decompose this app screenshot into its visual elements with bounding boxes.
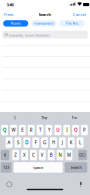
button[interactable]: Z	[12, 150, 19, 160]
button[interactable]: B	[48, 150, 55, 160]
staticText: O	[74, 127, 77, 133]
button[interactable]: Search	[65, 162, 87, 173]
staticText: R	[30, 127, 33, 133]
button[interactable]: The	[29, 112, 59, 123]
staticText: J	[62, 140, 63, 146]
staticText: C	[32, 152, 35, 158]
staticText: A	[8, 140, 11, 146]
button[interactable]: Forename(s)	[31, 20, 56, 27]
staticText: X	[23, 152, 26, 158]
button[interactable]: E	[19, 125, 26, 135]
button[interactable]: M	[65, 150, 72, 160]
staticText: M	[67, 152, 71, 158]
staticText: Z	[14, 152, 17, 158]
staticText: Search	[38, 12, 51, 17]
button[interactable]: Search	[33, 10, 57, 18]
button[interactable]: P	[81, 125, 88, 135]
button[interactable]: S	[15, 137, 21, 148]
staticText: U	[56, 127, 59, 133]
button[interactable]: Emoji keyboard	[3, 178, 15, 190]
button[interactable]: A	[6, 137, 12, 148]
staticText: 123	[3, 165, 9, 170]
button[interactable]: O	[72, 125, 79, 135]
button[interactable]: W	[10, 125, 17, 135]
button[interactable]: C	[30, 150, 37, 160]
button[interactable]: I’m	[59, 112, 90, 123]
button[interactable]: Q	[1, 125, 8, 135]
staticText: P	[83, 127, 86, 133]
staticText: Search	[70, 165, 81, 170]
staticText: W	[11, 127, 15, 133]
staticText: Name	[11, 21, 21, 26]
staticText: I’m	[71, 115, 77, 120]
staticText: Cancel	[73, 12, 86, 17]
staticText: ⬆	[3, 152, 7, 158]
button[interactable]: K	[68, 137, 75, 148]
button[interactable]: T	[37, 125, 43, 135]
staticText: B	[50, 152, 53, 158]
staticText: D	[25, 140, 28, 146]
staticText: K	[70, 140, 73, 146]
button[interactable]: ⬆	[1, 150, 9, 160]
button[interactable]: 123	[1, 162, 12, 173]
button[interactable]: V	[39, 150, 46, 160]
button[interactable]: ⌦	[78, 150, 87, 160]
button[interactable]: L	[77, 137, 83, 148]
staticText: G	[43, 140, 46, 146]
staticText: ⌦	[79, 152, 86, 158]
button[interactable]: Dictation	[75, 178, 87, 190]
button[interactable]: D	[23, 137, 30, 148]
staticText: N	[58, 152, 61, 158]
staticText: space	[33, 165, 43, 170]
staticText: File No.	[66, 21, 79, 26]
staticText: F	[35, 140, 37, 146]
button[interactable]: R	[28, 125, 35, 135]
staticText: V	[41, 152, 44, 158]
button[interactable]: F	[32, 137, 39, 148]
staticText: H	[52, 140, 55, 146]
staticText: L	[79, 140, 81, 146]
button[interactable]: space	[14, 162, 63, 173]
button[interactable]: U	[54, 125, 61, 135]
staticText: Trees	[3, 12, 13, 17]
button[interactable]: Cancel	[72, 10, 86, 18]
staticText: Y	[48, 127, 50, 133]
button[interactable]: I	[63, 125, 70, 135]
button[interactable]: Name	[3, 20, 28, 27]
button[interactable]: G	[41, 137, 48, 148]
button[interactable]: H	[50, 137, 57, 148]
staticText: S	[17, 140, 19, 146]
button[interactable]: Trees	[3, 10, 17, 18]
button[interactable]: X	[21, 150, 28, 160]
button[interactable]: N	[57, 150, 63, 160]
staticText: T	[39, 127, 41, 133]
button[interactable]: File No.	[60, 20, 85, 27]
button[interactable]: I	[0, 112, 29, 123]
staticText: Surname, Given Name(s)	[9, 33, 50, 38]
staticText: E	[21, 127, 23, 133]
staticText: Forename(s)	[34, 21, 54, 26]
button[interactable]: J	[59, 137, 66, 148]
staticText: I	[66, 127, 67, 133]
staticText: I	[14, 115, 15, 120]
button[interactable]: Y	[45, 125, 52, 135]
staticText: Q	[3, 127, 6, 133]
staticText: The	[41, 115, 47, 120]
staticText: 3:40	[6, 2, 13, 7]
